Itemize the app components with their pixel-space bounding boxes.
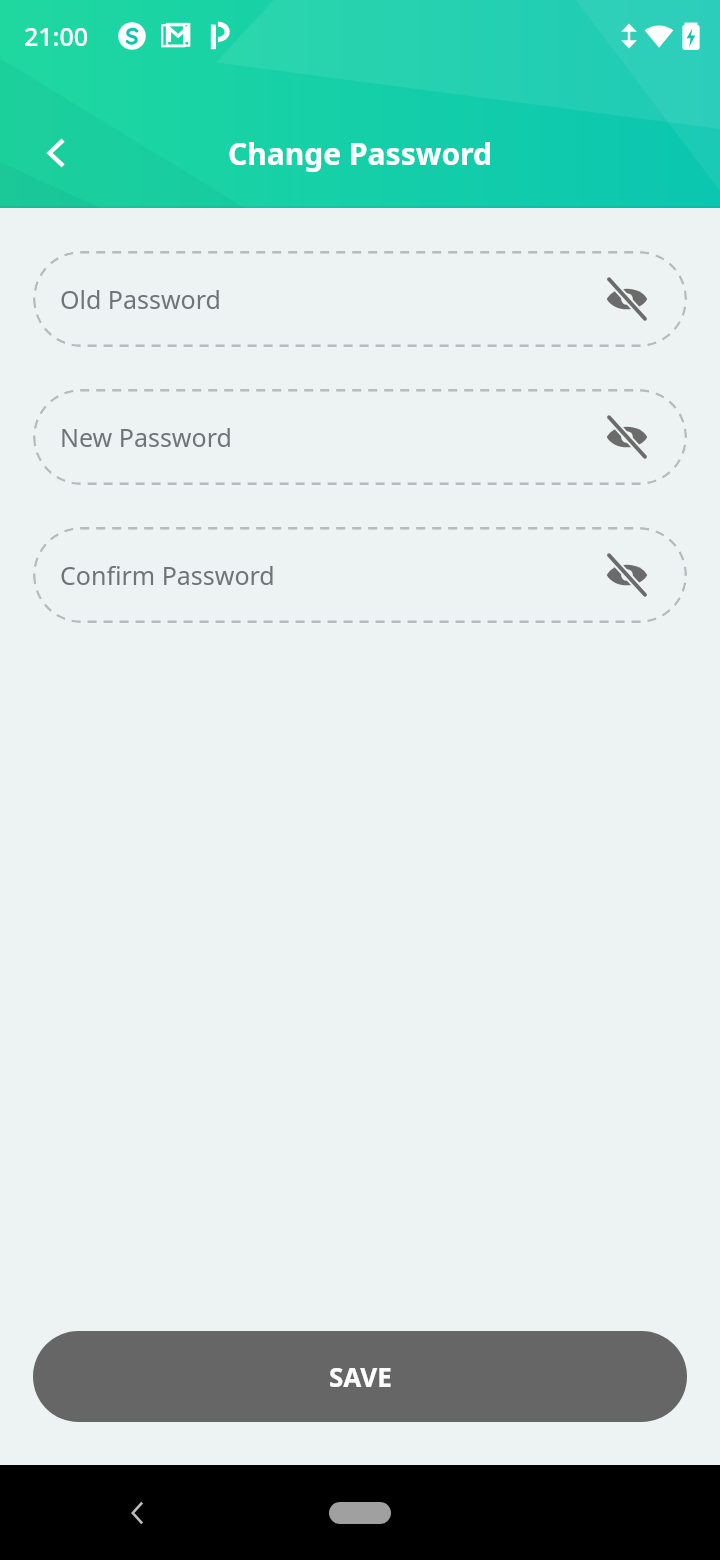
button[interactable]: Toggle password visibility (599, 409, 655, 465)
button[interactable]: Back (108, 1483, 168, 1543)
button[interactable]: SAVE (33, 1331, 687, 1422)
staticText: New Password (60, 420, 232, 454)
staticText: Confirm Password (60, 558, 275, 592)
staticText: Change Password (228, 133, 492, 174)
staticText: SAVE (329, 1359, 392, 1394)
button[interactable]: New Password (33, 389, 687, 485)
staticText: Old Password (60, 282, 221, 316)
button[interactable]: Home (329, 1502, 391, 1524)
button[interactable]: Old Password (33, 251, 687, 347)
button[interactable]: Toggle password visibility (599, 547, 655, 603)
staticText: 21:00 (24, 19, 89, 53)
button[interactable]: Confirm Password (33, 527, 687, 623)
button[interactable]: Toggle password visibility (599, 271, 655, 327)
button[interactable]: Back (26, 122, 88, 184)
